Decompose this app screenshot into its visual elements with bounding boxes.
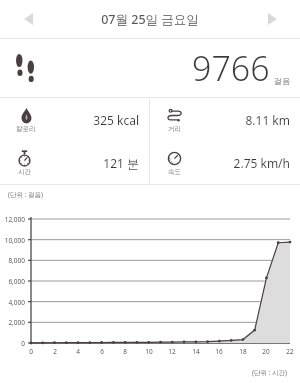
staticText: 121 분: [103, 155, 139, 171]
staticText: 시간: [18, 168, 31, 176]
staticText: 9766: [192, 45, 270, 91]
button[interactable]: 거리: [150, 98, 300, 141]
staticText: 10: [143, 347, 155, 356]
staticText: 8.11 km: [245, 112, 290, 128]
button[interactable]: 칼로리: [0, 98, 149, 141]
staticText: 16: [213, 347, 225, 356]
staticText: 2.75 km/h: [233, 155, 290, 171]
button[interactable]: Previous day: [16, 7, 40, 31]
staticText: (단위 : 걸음): [8, 190, 44, 199]
staticText: 8,000: [0, 256, 25, 265]
staticText: 20: [260, 347, 272, 356]
staticText: 12,000: [0, 215, 25, 224]
button[interactable]: 시간: [0, 141, 149, 184]
staticText: 4,000: [0, 298, 25, 307]
staticText: 325 kcal: [93, 112, 139, 128]
staticText: 8: [119, 347, 131, 356]
staticText: (단위 : 시간): [252, 368, 288, 377]
staticText: 6: [96, 347, 108, 356]
button[interactable]: 속도: [150, 141, 300, 184]
staticText: 0: [0, 339, 25, 348]
staticText: 12: [166, 347, 178, 356]
button[interactable]: Next day: [260, 7, 284, 31]
staticText: 07월 25일 금요일: [101, 11, 199, 28]
staticText: 2: [49, 347, 61, 356]
staticText: 4: [72, 347, 84, 356]
staticText: 걸음: [274, 76, 290, 86]
staticText: 22: [284, 347, 296, 356]
staticText: 2,000: [0, 318, 25, 327]
staticText: 14: [190, 347, 202, 356]
staticText: 0: [25, 347, 37, 356]
staticText: 6,000: [0, 277, 25, 286]
staticText: 10,000: [0, 236, 25, 245]
staticText: 속도: [168, 168, 181, 176]
staticText: 거리: [168, 125, 181, 133]
button[interactable]: 9766: [0, 39, 300, 97]
staticText: 칼로리: [16, 125, 36, 133]
staticText: 18: [237, 347, 249, 356]
